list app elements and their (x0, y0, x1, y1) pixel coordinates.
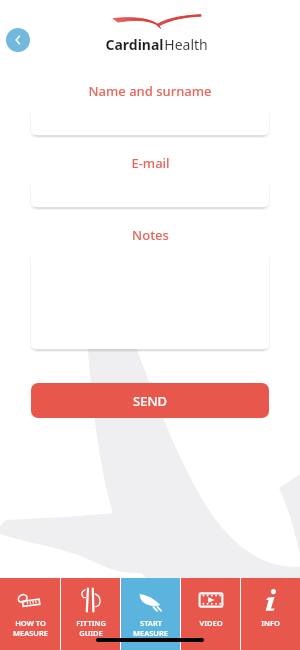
staticText: MEASURE (13, 628, 48, 638)
staticText: GUIDE (79, 628, 103, 638)
staticText: FITTING (76, 618, 106, 628)
staticText: Cardinal (105, 35, 164, 54)
staticText: HOW TO (15, 618, 46, 628)
staticText: Health (164, 35, 208, 54)
button[interactable]: HOW TO (0, 578, 60, 650)
staticText: VIDEO (199, 618, 223, 628)
staticText: SEND (133, 392, 167, 410)
staticText: Notes (132, 226, 169, 244)
staticText: START (140, 618, 162, 628)
button[interactable]: START (121, 578, 180, 650)
button[interactable]: SEND (31, 383, 269, 418)
button[interactable]: Back (6, 28, 30, 52)
staticText: MEASURE (133, 628, 168, 638)
staticText: Name and surname (88, 82, 212, 100)
button[interactable]: FITTING (61, 578, 120, 650)
button[interactable]: VIDEO (181, 578, 240, 650)
staticText: E-mail (131, 154, 170, 172)
button[interactable]: INFO (241, 578, 300, 650)
staticText: INFO (261, 618, 280, 628)
